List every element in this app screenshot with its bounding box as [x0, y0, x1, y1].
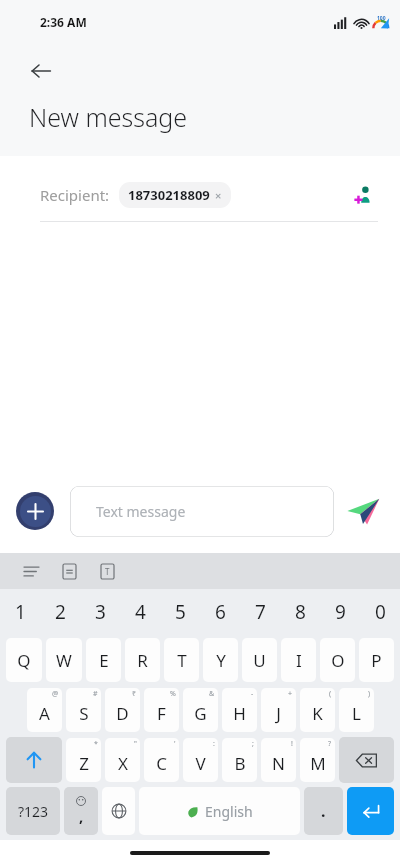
button[interactable]: Shift	[6, 737, 62, 783]
staticText: M	[310, 752, 326, 775]
button[interactable]: Add attachment	[16, 492, 54, 530]
button[interactable]: 2	[40, 589, 80, 635]
staticText: +	[288, 689, 293, 699]
staticText: :	[213, 739, 215, 749]
staticText: -	[251, 689, 254, 699]
staticText: O	[331, 649, 345, 672]
staticText: #	[93, 689, 98, 699]
staticText: K	[312, 702, 323, 725]
button[interactable]: ;	[222, 738, 257, 782]
button[interactable]: .	[304, 787, 343, 835]
button[interactable]: Text format	[94, 558, 120, 584]
staticText: S	[79, 702, 89, 725]
button[interactable]: -	[222, 688, 257, 732]
staticText: .	[321, 800, 326, 822]
button[interactable]: T	[164, 638, 199, 682]
staticText: P	[371, 649, 382, 672]
staticText: 8	[295, 599, 306, 625]
button[interactable]: 0	[360, 589, 400, 635]
button[interactable]: Backspace	[339, 737, 394, 783]
staticText: V	[195, 752, 206, 775]
staticText: D	[116, 702, 129, 725]
staticText: ₹	[132, 689, 137, 699]
staticText: 9	[335, 599, 346, 625]
button[interactable]: ?	[300, 738, 335, 782]
staticText: Recipient:	[40, 185, 110, 205]
staticText: 18730218809	[128, 186, 210, 204]
button[interactable]: !	[261, 738, 296, 782]
button[interactable]: Q	[6, 638, 42, 682]
button[interactable]: 3	[80, 589, 120, 635]
button[interactable]: Enter	[347, 787, 394, 835]
button[interactable]: E	[86, 638, 121, 682]
button[interactable]: 18730218809	[119, 182, 231, 208]
staticText: W	[56, 649, 72, 672]
staticText: ,	[79, 806, 84, 826]
staticText: 1	[15, 599, 26, 625]
staticText: X	[118, 752, 128, 775]
staticText: English	[205, 802, 253, 821]
button[interactable]: P	[359, 638, 394, 682]
staticText: Z	[79, 752, 89, 775]
staticText: ×	[215, 188, 222, 203]
button[interactable]: 4	[120, 589, 160, 635]
button[interactable]: 7	[240, 589, 280, 635]
button[interactable]: English	[139, 787, 300, 835]
staticText: E	[99, 649, 109, 672]
staticText: 2	[55, 599, 66, 625]
staticText: 7	[255, 599, 266, 625]
button[interactable]: %	[144, 688, 179, 732]
button[interactable]: W	[46, 638, 82, 682]
button[interactable]: #	[66, 688, 101, 732]
button[interactable]: "	[105, 738, 140, 782]
button[interactable]: ₹	[105, 688, 140, 732]
staticText: G	[194, 702, 207, 725]
button[interactable]: Y	[203, 638, 238, 682]
button[interactable]: U	[242, 638, 277, 682]
staticText: 4	[135, 599, 146, 625]
button[interactable]: Text message	[70, 486, 334, 537]
staticText: B	[234, 752, 246, 775]
button[interactable]: 1	[0, 589, 40, 635]
button[interactable]: I	[281, 638, 316, 682]
button[interactable]: :	[183, 738, 218, 782]
button[interactable]: 8	[280, 589, 320, 635]
staticText: Text message	[96, 502, 186, 521]
button[interactable]: Comma and emoji	[64, 787, 98, 835]
button[interactable]: &	[183, 688, 218, 732]
button[interactable]: 9	[320, 589, 360, 635]
staticText: ?	[328, 739, 332, 749]
button[interactable]: Add contact	[348, 180, 378, 210]
button[interactable]: (	[300, 688, 335, 732]
staticText: (	[329, 689, 332, 699]
button[interactable]: Back	[24, 54, 58, 88]
staticText: U	[253, 649, 266, 672]
staticText: @	[52, 689, 59, 699]
staticText: %	[170, 689, 176, 699]
button[interactable]: *	[66, 738, 101, 782]
button[interactable]: ?123	[6, 787, 60, 835]
button[interactable]: 5	[160, 589, 200, 635]
button[interactable]: Clipboard	[56, 558, 82, 584]
staticText: )	[368, 689, 371, 699]
staticText: 6	[215, 599, 226, 625]
button[interactable]: Switch language	[102, 787, 135, 835]
staticText: I	[296, 649, 302, 672]
button[interactable]: R	[125, 638, 160, 682]
button[interactable]: 6	[200, 589, 240, 635]
staticText: 2:36 AM	[40, 14, 87, 30]
staticText: Y	[216, 649, 226, 672]
staticText: H	[233, 702, 246, 725]
staticText: F	[157, 702, 166, 725]
button[interactable]: Menu	[18, 558, 44, 584]
staticText: !	[291, 739, 293, 749]
button[interactable]: Send	[342, 490, 384, 532]
staticText: *	[94, 739, 98, 749]
button[interactable]: @	[27, 688, 62, 732]
staticText: T	[105, 566, 110, 577]
staticText: &	[209, 689, 215, 699]
button[interactable]: O	[320, 638, 355, 682]
button[interactable]: +	[261, 688, 296, 732]
button[interactable]: '	[144, 738, 179, 782]
button[interactable]: )	[339, 688, 374, 732]
